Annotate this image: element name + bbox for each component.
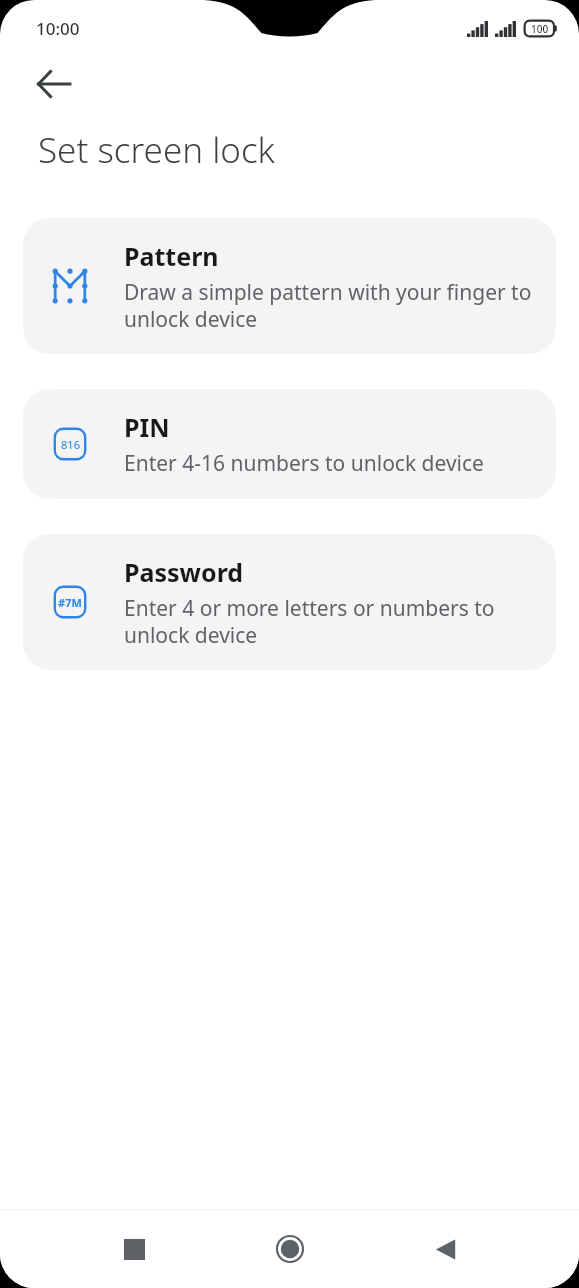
staticText: 100: [531, 22, 549, 36]
staticText: Pattern: [124, 239, 219, 273]
staticText: Set screen lock: [38, 126, 275, 174]
staticText: 10:00: [36, 17, 80, 40]
button[interactable]: 816: [23, 389, 556, 499]
staticText: #7M: [58, 595, 82, 610]
button[interactable]: Back: [419, 1223, 471, 1275]
staticText: Draw a simple pattern with your finger t…: [124, 278, 536, 333]
button[interactable]: Recents: [108, 1223, 160, 1275]
button[interactable]: Home: [264, 1223, 316, 1275]
button[interactable]: Back: [26, 56, 82, 112]
staticText: PIN: [124, 410, 170, 444]
button[interactable]: #7M: [23, 534, 556, 670]
staticText: Enter 4-16 numbers to unlock device: [124, 449, 484, 478]
staticText: 816: [61, 437, 80, 452]
staticText: Password: [124, 555, 244, 589]
button[interactable]: Pattern: [23, 218, 556, 354]
staticText: Enter 4 or more letters or numbers to un…: [124, 594, 536, 649]
